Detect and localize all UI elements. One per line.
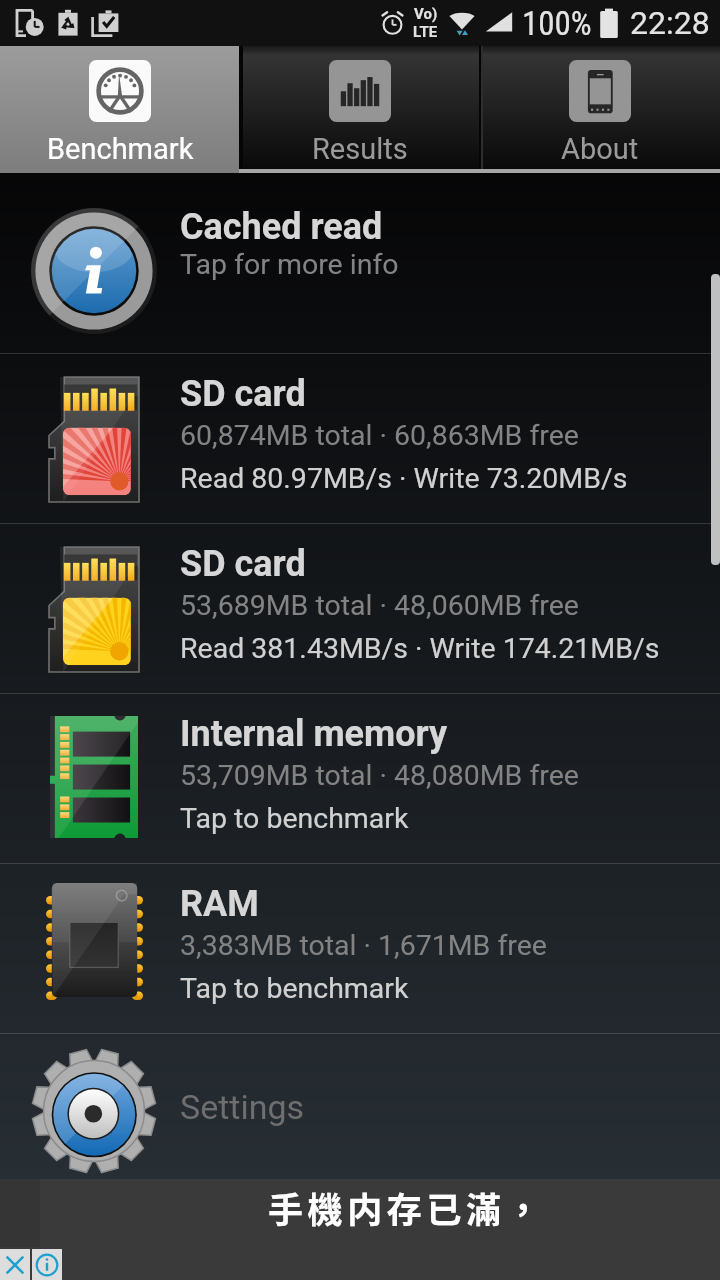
button[interactable]: Close ad: [0, 1249, 30, 1280]
staticText: Results: [312, 132, 408, 166]
button[interactable]: Results: [240, 46, 480, 173]
staticText: 53,689MB total · 48,060MB free: [180, 589, 579, 622]
staticText: Cached read: [180, 206, 383, 248]
button[interactable]: SD card: [0, 524, 720, 693]
button[interactable]: Internal memory: [0, 694, 720, 863]
staticText: SD card: [180, 373, 306, 415]
staticText: Vo): [414, 5, 438, 23]
staticText: Settings: [180, 1087, 305, 1127]
staticText: SD card: [180, 543, 306, 585]
button[interactable]: SD card: [0, 354, 720, 523]
button[interactable]: Cached read: [0, 173, 720, 353]
staticText: Benchmark: [47, 132, 194, 166]
staticText: RAM: [180, 883, 259, 925]
staticText: Tap for more info: [180, 248, 399, 281]
staticText: 60,874MB total · 60,863MB free: [180, 419, 579, 452]
button[interactable]: RAM: [0, 864, 720, 1033]
staticText: 3,383MB total · 1,671MB free: [180, 929, 547, 962]
button[interactable]: Ad info: [32, 1249, 62, 1280]
button[interactable]: About: [480, 46, 720, 173]
staticText: 53,709MB total · 48,080MB free: [180, 759, 579, 792]
button[interactable]: Benchmark: [0, 46, 240, 173]
staticText: 22:28: [630, 4, 710, 42]
staticText: About: [561, 132, 639, 166]
staticText: Read 80.97MB/s · Write 73.20MB/s: [180, 462, 628, 495]
staticText: 100%: [522, 4, 592, 43]
staticText: Internal memory: [180, 713, 448, 755]
staticText: Tap to benchmark: [180, 972, 409, 1005]
staticText: Read 381.43MB/s · Write 174.21MB/s: [180, 632, 660, 665]
staticText: 手機内存已滿，: [268, 1182, 546, 1233]
button[interactable]: Settings: [0, 1034, 720, 1179]
staticText: Tap to benchmark: [180, 802, 409, 835]
staticText: LTE: [413, 23, 438, 41]
